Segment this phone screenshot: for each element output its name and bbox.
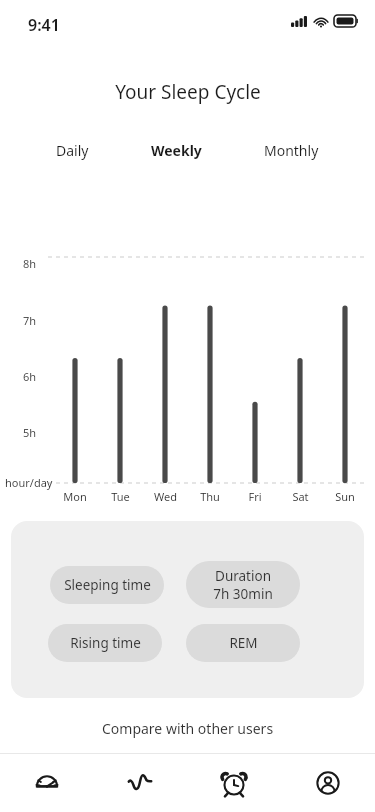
staticText: Sleeping time	[64, 576, 151, 594]
staticText: Sat	[292, 489, 309, 504]
staticText: Fri	[248, 489, 262, 504]
staticText: 9:41	[28, 14, 60, 36]
staticText: Tue	[111, 489, 130, 504]
button[interactable]: Compare with other users	[0, 714, 375, 742]
button[interactable]: REM	[186, 624, 300, 662]
staticText: Your Sleep Cycle	[115, 79, 261, 105]
staticText: 7h 30min	[213, 585, 273, 603]
button[interactable]: Duration	[186, 561, 300, 608]
button[interactable]: Weekly	[141, 136, 212, 165]
button[interactable]: Profile	[281, 753, 375, 812]
button[interactable]: Alarm	[187, 753, 281, 812]
staticText: Weekly	[151, 141, 202, 160]
staticText: Wed	[154, 489, 177, 504]
staticText: 6h	[23, 369, 37, 384]
staticText: Daily	[56, 141, 89, 160]
button[interactable]: Sleeping time	[50, 566, 164, 604]
staticText: Duration	[215, 567, 271, 585]
staticText: Monthly	[264, 141, 319, 160]
button[interactable]: Rising time	[48, 624, 162, 662]
staticText: REM	[229, 634, 258, 652]
staticText: 5h	[23, 425, 37, 440]
staticText: Sun	[335, 489, 355, 504]
staticText: 7h	[23, 313, 37, 328]
staticText: 8h	[23, 256, 37, 271]
button[interactable]: Dashboard	[0, 753, 93, 812]
staticText: Compare with other users	[102, 719, 274, 738]
staticText: Thu	[200, 489, 220, 504]
staticText: hour/day	[5, 475, 53, 490]
staticText: Mon	[63, 489, 87, 504]
button[interactable]: Monthly	[254, 136, 329, 165]
button[interactable]: Sleep waveform	[93, 753, 187, 812]
staticText: Rising time	[70, 634, 141, 652]
button[interactable]: Daily	[46, 136, 99, 165]
